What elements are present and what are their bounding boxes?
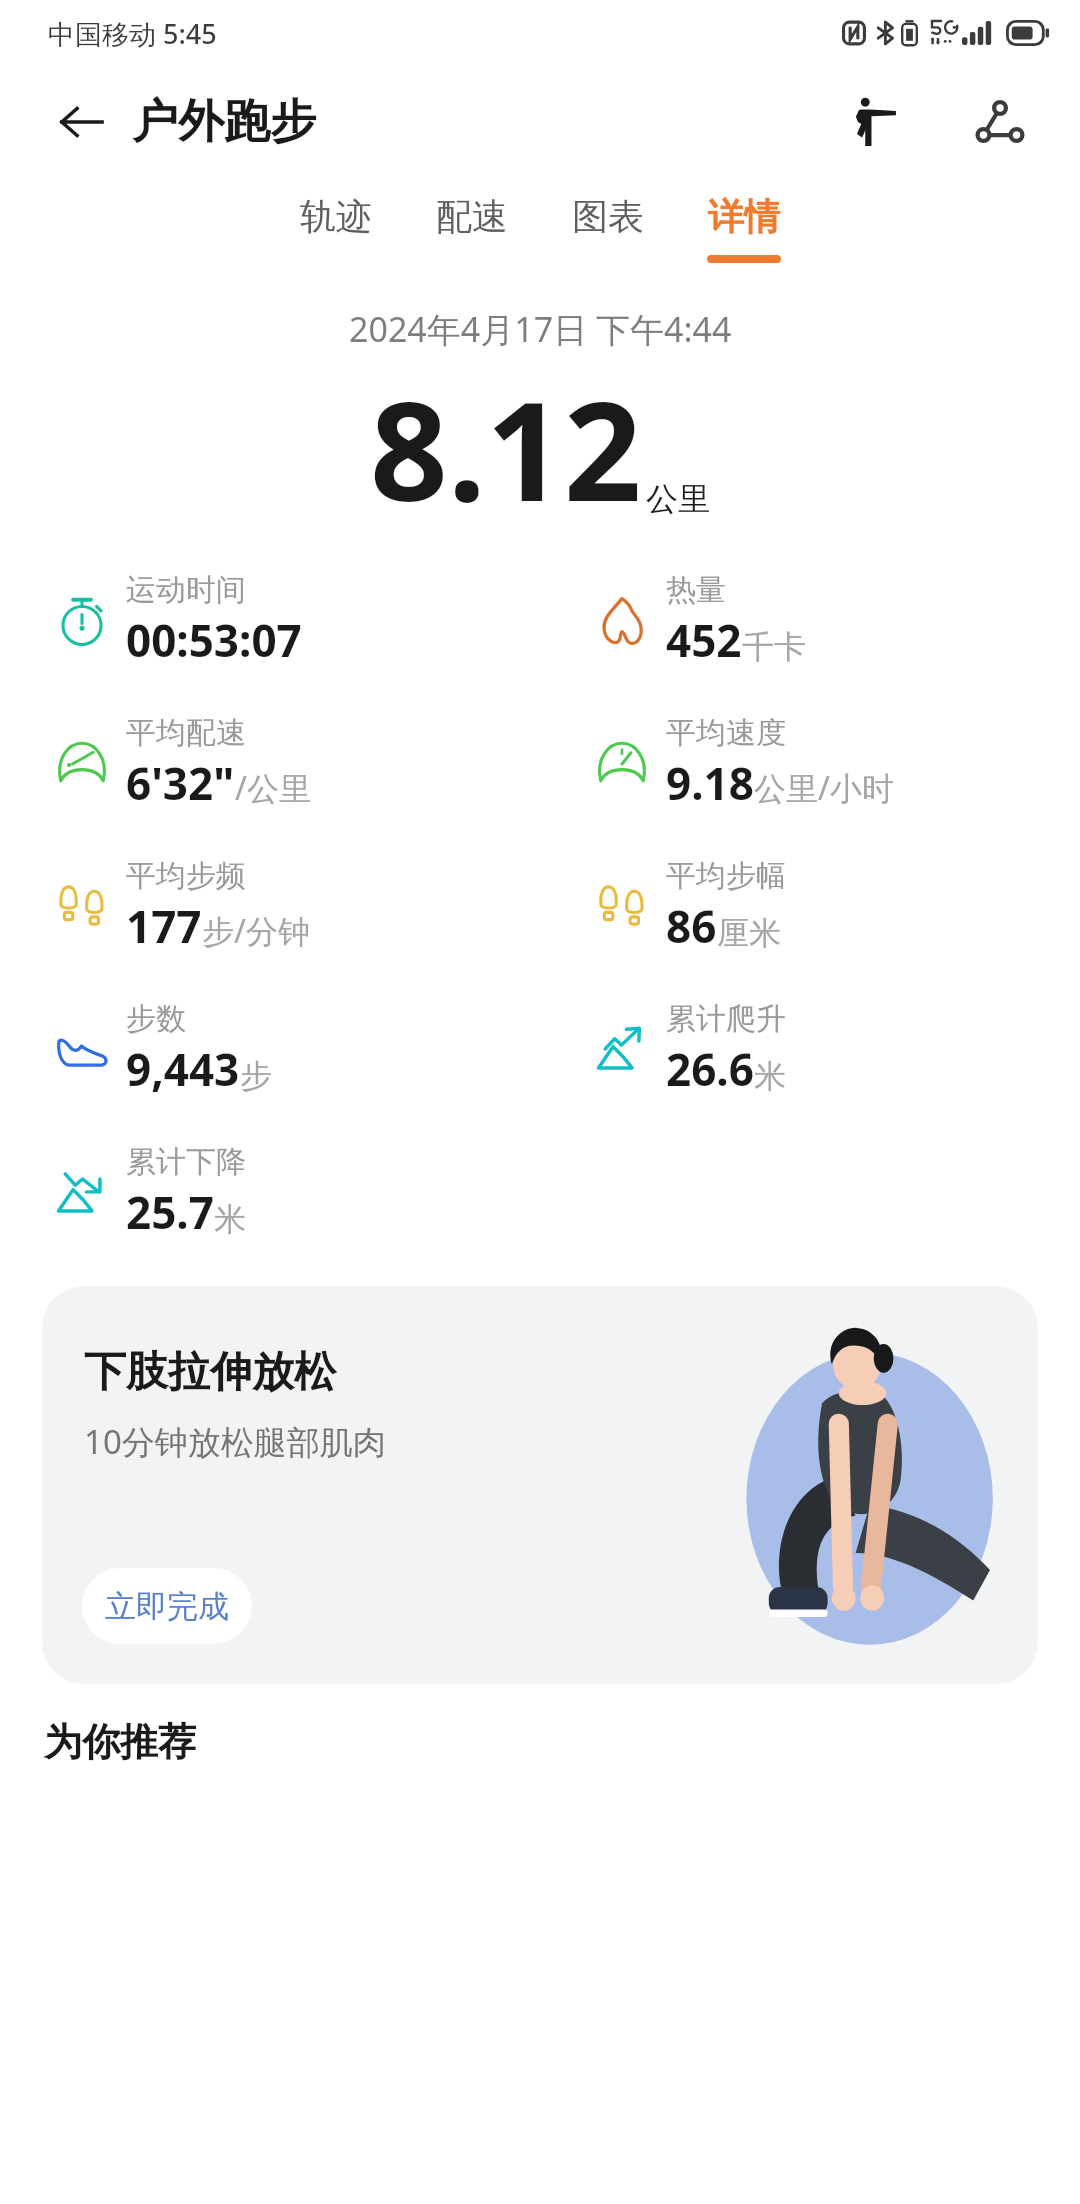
staticText: 为你推荐 — [44, 1718, 196, 1766]
button[interactable]: Stretch exercises — [836, 86, 908, 158]
staticText: 累计下降 — [126, 1143, 246, 1181]
staticText: 00:53:07 — [126, 610, 302, 670]
staticText: 8.12 — [370, 356, 642, 541]
staticText: 10分钟放松腿部肌肉 — [84, 1419, 386, 1464]
button[interactable]: 累计下降 — [54, 1143, 540, 1242]
staticText: 厘米 — [717, 913, 781, 953]
button[interactable]: Back — [46, 88, 114, 156]
staticText: 米 — [214, 1199, 246, 1239]
staticText: 中国移动 5:45 — [48, 15, 217, 52]
button[interactable]: 配速 — [404, 178, 540, 286]
staticText: 累计爬升 — [666, 1000, 786, 1038]
button[interactable]: 运动时间 — [54, 571, 540, 670]
staticText: 公里/小时 — [754, 766, 894, 810]
staticText: 详情 — [708, 194, 780, 239]
button[interactable]: 平均配速 — [54, 714, 540, 813]
staticText: 步数 — [126, 1000, 186, 1038]
staticText: 6'32" — [126, 753, 235, 813]
staticText: 步 — [240, 1056, 272, 1096]
staticText: 平均速度 — [666, 714, 786, 752]
button[interactable]: 下肢拉伸放松 — [42, 1286, 1038, 1684]
button[interactable]: 热量 — [594, 571, 1080, 670]
staticText: 热量 — [666, 571, 726, 609]
staticText: 轨迹 — [300, 194, 372, 239]
button[interactable]: 平均步频 — [54, 857, 540, 956]
staticText: 26.6 — [666, 1039, 754, 1099]
staticText: 米 — [754, 1056, 786, 1096]
button[interactable]: 平均速度 — [594, 714, 1080, 813]
button[interactable]: 累计爬升 — [594, 1000, 1080, 1099]
button[interactable]: 立即完成 — [82, 1568, 252, 1644]
staticText: 下肢拉伸放松 — [84, 1346, 336, 1399]
staticText: 配速 — [436, 194, 508, 239]
staticText: 177 — [126, 896, 202, 956]
staticText: 图表 — [572, 194, 644, 239]
button[interactable]: 详情 — [676, 178, 812, 286]
staticText: 平均步幅 — [666, 857, 786, 895]
staticText: 运动时间 — [126, 571, 246, 609]
staticText: 平均配速 — [126, 714, 246, 752]
staticText: 立即完成 — [105, 1587, 229, 1626]
button[interactable]: 步数 — [54, 1000, 540, 1099]
staticText: 452 — [666, 610, 742, 670]
staticText: 千卡 — [742, 627, 806, 667]
staticText: 户外跑步 — [132, 93, 316, 151]
staticText: 平均步频 — [126, 857, 246, 895]
staticText: 步/分钟 — [202, 909, 310, 953]
button[interactable]: 平均步幅 — [594, 857, 1080, 956]
staticText: 9,443 — [126, 1039, 240, 1099]
staticText: 9.18 — [666, 753, 754, 813]
staticText: 25.7 — [126, 1182, 214, 1242]
staticText: 公里 — [646, 479, 710, 519]
button[interactable]: 轨迹 — [268, 178, 404, 286]
staticText: /公里 — [235, 766, 311, 810]
button[interactable]: 图表 — [540, 178, 676, 286]
staticText: 2024年4月17日 下午4:44 — [349, 306, 732, 352]
button[interactable]: Share — [964, 86, 1036, 158]
staticText: 86 — [666, 896, 717, 956]
